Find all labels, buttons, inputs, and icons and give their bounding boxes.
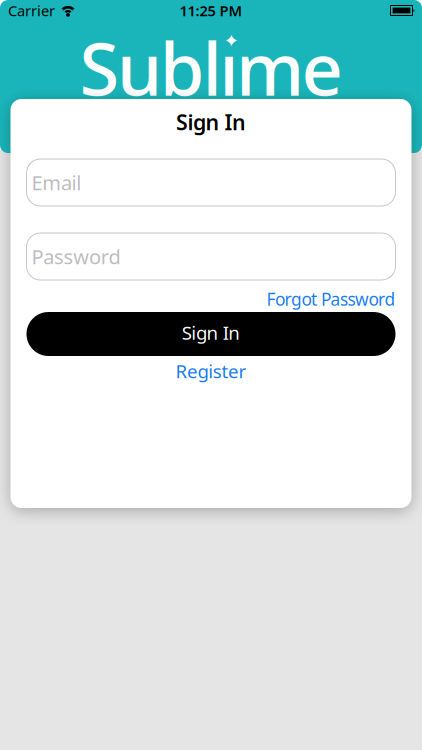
staticText: Sign In <box>182 320 240 345</box>
button[interactable]: Password <box>26 233 395 280</box>
staticText: Forgot Password <box>266 287 395 310</box>
staticText: Password <box>31 243 120 270</box>
staticText: Register <box>175 359 247 383</box>
button[interactable]: Email <box>26 159 395 206</box>
staticText: Email <box>31 169 81 196</box>
button[interactable]: Register <box>175 361 247 381</box>
staticText: Sublime <box>79 20 343 116</box>
staticText: 11:25 PM <box>179 1 242 20</box>
button[interactable]: Sign In <box>26 312 395 356</box>
staticText: Sign In <box>176 108 246 136</box>
staticText: Carrier <box>8 1 55 20</box>
button[interactable]: Forgot Password <box>266 289 395 309</box>
